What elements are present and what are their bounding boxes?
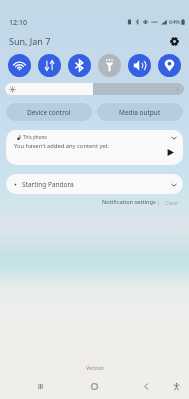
button[interactable]: Sound xyxy=(128,54,151,77)
staticText: Starting Pandora xyxy=(22,180,74,189)
button[interactable]: Wi-Fi xyxy=(8,54,31,77)
button[interactable]: Flashlight xyxy=(98,54,121,77)
staticText: Sun, Jan 7 xyxy=(9,35,51,47)
button[interactable]: Brightness xyxy=(5,83,184,95)
button[interactable]: Recents xyxy=(30,376,50,396)
button[interactable]: Device control xyxy=(6,103,92,121)
button[interactable]: Clear xyxy=(163,197,181,208)
staticText: 12:10 xyxy=(9,18,27,28)
staticText: Verizon xyxy=(86,365,104,372)
staticText: 64% xyxy=(169,18,180,25)
button[interactable]: Bluetooth xyxy=(68,54,91,77)
staticText: Notification settings xyxy=(102,198,156,206)
staticText: You haven't added any content yet. xyxy=(14,142,110,150)
button[interactable]: Media output xyxy=(97,103,183,121)
button[interactable]: Notification settings xyxy=(100,196,158,208)
button[interactable]: Home xyxy=(84,376,104,396)
button[interactable]: Settings xyxy=(165,32,183,50)
button[interactable]: Mobile data xyxy=(38,54,61,77)
staticText: Clear xyxy=(165,199,179,206)
staticText: This phone xyxy=(23,134,47,140)
button[interactable]: Starting Pandora xyxy=(6,174,183,194)
staticText: Media output xyxy=(119,108,161,117)
button[interactable]: Collapse xyxy=(169,133,178,142)
button[interactable]: Expand xyxy=(169,180,178,189)
button[interactable]: Back xyxy=(136,376,156,396)
staticText: Device control xyxy=(27,108,71,117)
button[interactable]: Accessibility xyxy=(166,376,186,396)
button[interactable]: Location xyxy=(158,54,181,77)
button[interactable]: This phone xyxy=(6,130,183,165)
button[interactable]: Play xyxy=(165,147,176,158)
